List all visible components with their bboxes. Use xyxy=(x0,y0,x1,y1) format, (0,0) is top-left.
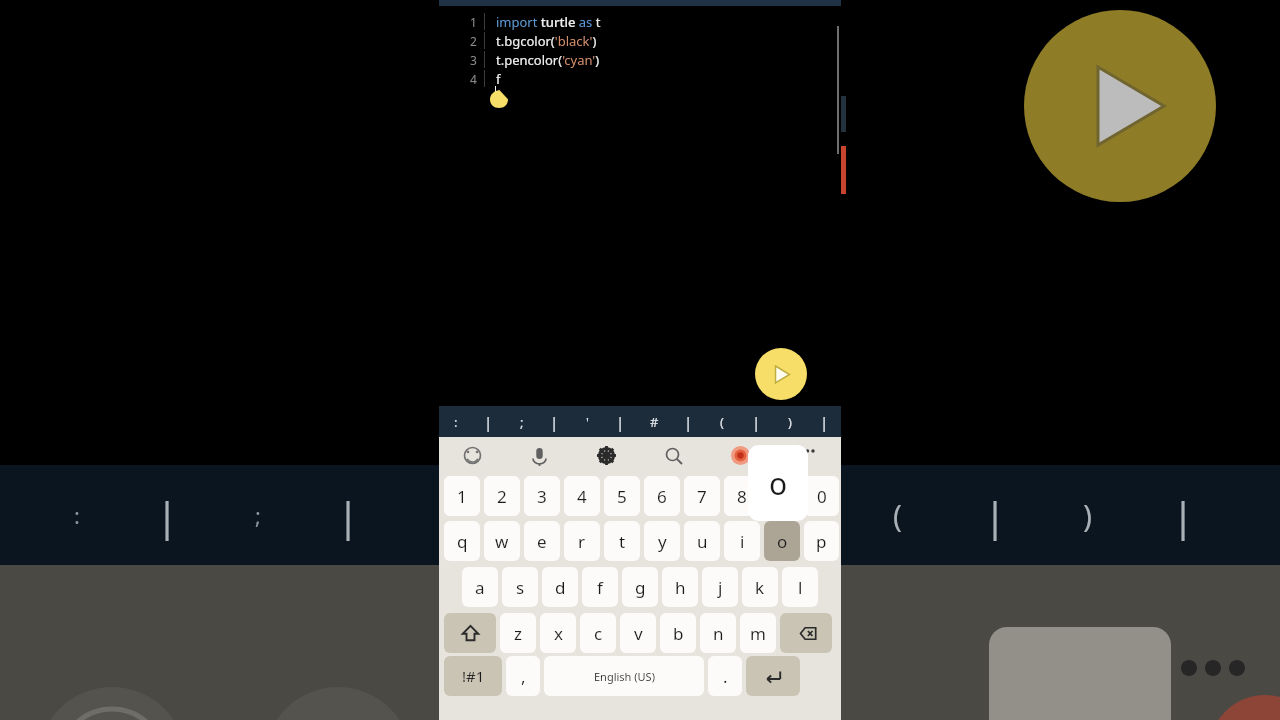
staticText: t.bgcolor('black') xyxy=(496,32,597,50)
staticText: ( xyxy=(893,495,902,536)
button[interactable]: | xyxy=(807,406,841,437)
staticText: . xyxy=(723,665,728,688)
staticText: ) xyxy=(1083,495,1092,536)
button[interactable]: n xyxy=(700,613,736,653)
button[interactable]: o xyxy=(764,521,800,561)
button[interactable]: q xyxy=(444,521,480,561)
button[interactable]: c xyxy=(580,613,616,653)
staticText: j xyxy=(718,576,723,599)
button[interactable]: j xyxy=(702,567,738,607)
staticText: | xyxy=(752,412,761,432)
button[interactable]: k xyxy=(742,567,778,607)
button[interactable]: | xyxy=(604,406,637,437)
staticText: | xyxy=(484,412,493,432)
button[interactable]: p xyxy=(804,521,839,561)
button[interactable]: 7 xyxy=(684,476,720,516)
staticText: 5 xyxy=(617,485,627,508)
staticText: 3 xyxy=(537,485,547,508)
staticText: 8 xyxy=(737,485,747,508)
button[interactable]: e xyxy=(524,521,560,561)
staticText: ( xyxy=(720,413,724,431)
button[interactable]: , xyxy=(506,656,540,696)
button[interactable]: # xyxy=(637,406,671,437)
staticText: u xyxy=(697,530,708,553)
button[interactable]: Record xyxy=(707,437,774,474)
staticText: f xyxy=(597,576,603,599)
staticText: # xyxy=(650,413,659,431)
staticText: | xyxy=(984,488,1007,542)
button[interactable]: r xyxy=(564,521,600,561)
button[interactable]: | xyxy=(538,406,571,437)
button[interactable]: 8 xyxy=(724,476,760,516)
staticText: | xyxy=(616,412,625,432)
button[interactable]: i xyxy=(724,521,760,561)
button[interactable]: s xyxy=(502,567,538,607)
button[interactable]: u xyxy=(684,521,720,561)
staticText: o xyxy=(777,530,788,553)
button[interactable]: : xyxy=(439,406,472,437)
button[interactable]: Shift xyxy=(444,613,496,653)
button[interactable]: l xyxy=(782,567,818,607)
button[interactable]: Backspace xyxy=(780,613,832,653)
button[interactable]: d xyxy=(542,567,578,607)
button[interactable]: English (US) xyxy=(544,656,704,696)
staticText: import turtle as t xyxy=(496,13,601,31)
button[interactable]: z xyxy=(500,613,536,653)
staticText: t.pencolor('cyan') xyxy=(496,51,600,69)
button[interactable]: g xyxy=(622,567,658,607)
button[interactable]: a xyxy=(462,567,498,607)
staticText: 3 xyxy=(470,52,477,68)
button[interactable]: More options xyxy=(774,437,841,474)
staticText: : xyxy=(454,413,458,431)
staticText: | xyxy=(684,412,693,432)
button[interactable]: y xyxy=(644,521,680,561)
button[interactable]: b xyxy=(660,613,696,653)
button[interactable]: f xyxy=(582,567,618,607)
button[interactable]: m xyxy=(740,613,776,653)
staticText: 2 xyxy=(470,33,477,49)
staticText: 4 xyxy=(470,71,477,87)
button[interactable]: | xyxy=(671,406,705,437)
staticText: 1 xyxy=(470,14,477,30)
staticText: ' xyxy=(586,413,589,431)
staticText: 4 xyxy=(577,485,587,508)
button[interactable]: 6 xyxy=(644,476,680,516)
button[interactable]: 2 xyxy=(484,476,520,516)
button[interactable]: t xyxy=(604,521,640,561)
button[interactable]: . xyxy=(708,656,742,696)
staticText: c xyxy=(594,622,603,645)
button[interactable]: !#1 xyxy=(444,656,502,696)
button[interactable]: ( xyxy=(705,406,739,437)
staticText: q xyxy=(457,530,468,553)
staticText: z xyxy=(514,622,522,645)
button[interactable]: Voice input xyxy=(506,437,573,474)
button[interactable]: ) xyxy=(773,406,807,437)
button[interactable]: 0 xyxy=(804,476,839,516)
staticText: m xyxy=(750,622,766,645)
button[interactable]: ' xyxy=(571,406,604,437)
staticText: 6 xyxy=(657,485,667,508)
button[interactable]: v xyxy=(620,613,656,653)
staticText: 1 xyxy=(457,485,467,508)
button[interactable]: 1 xyxy=(444,476,480,516)
button[interactable]: 5 xyxy=(604,476,640,516)
staticText: t xyxy=(619,530,626,553)
button[interactable]: x xyxy=(540,613,576,653)
button[interactable]: Emoji xyxy=(439,437,506,474)
button[interactable]: 3 xyxy=(524,476,560,516)
button[interactable]: ; xyxy=(505,406,538,437)
button[interactable]: Enter xyxy=(746,656,800,696)
button[interactable]: h xyxy=(662,567,698,607)
staticText: g xyxy=(635,576,646,599)
button[interactable]: | xyxy=(472,406,505,437)
button[interactable]: Run xyxy=(755,348,807,400)
button[interactable]: 4 xyxy=(564,476,600,516)
staticText: w xyxy=(495,530,509,553)
button[interactable]: 9 xyxy=(764,476,800,516)
button[interactable]: Settings xyxy=(573,437,640,474)
button[interactable]: | xyxy=(739,406,773,437)
staticText: p xyxy=(816,530,827,553)
staticText: | xyxy=(1172,488,1195,542)
button[interactable]: w xyxy=(484,521,520,561)
button[interactable]: Search xyxy=(640,437,707,474)
